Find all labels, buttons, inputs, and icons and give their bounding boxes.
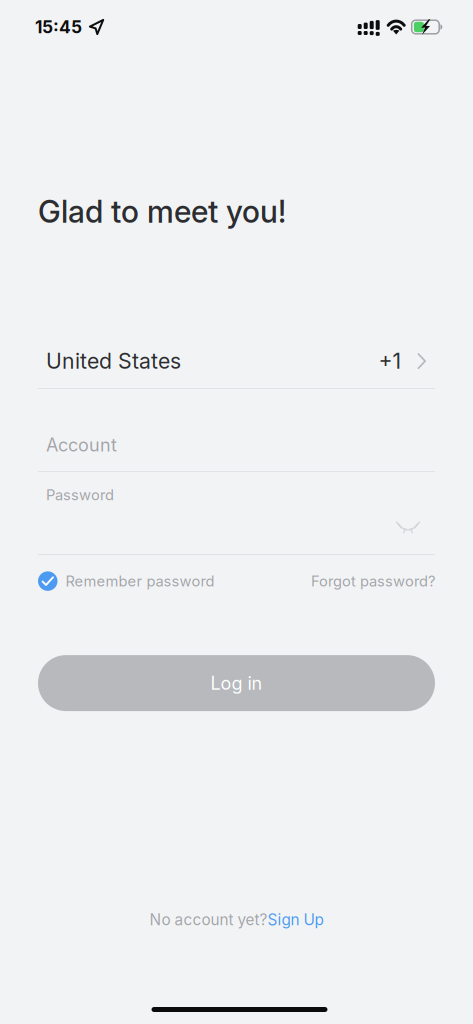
staticText: 15:45 — [35, 16, 82, 37]
staticText: Account — [46, 434, 117, 456]
staticText: Glad to meet you! — [38, 193, 286, 230]
staticText: United States — [46, 348, 181, 374]
staticText: Password — [46, 486, 114, 504]
staticText: Forgot password? — [311, 572, 435, 590]
button[interactable]: Remember password — [38, 571, 214, 591]
staticText: Log in — [210, 672, 262, 694]
button[interactable]: Log in — [38, 655, 435, 711]
button[interactable]: Show password — [396, 522, 420, 534]
button[interactable]: Forgot password? — [311, 572, 435, 590]
staticText: Remember password — [65, 572, 214, 590]
staticText: +1 — [378, 348, 401, 374]
staticText: No account yet? — [149, 910, 267, 929]
staticText: Sign Up — [267, 910, 323, 929]
button[interactable]: Sign Up — [267, 910, 323, 929]
button[interactable]: United States — [38, 329, 435, 389]
